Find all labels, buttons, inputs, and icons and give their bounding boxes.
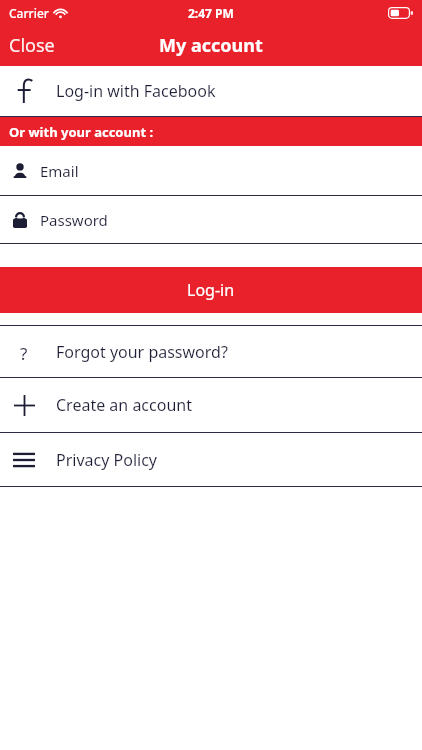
button[interactable]: Log-in with Facebook bbox=[0, 66, 422, 116]
staticText: Log-in with Facebook bbox=[56, 80, 216, 102]
staticText: My account bbox=[159, 33, 263, 58]
staticText: Create an account bbox=[56, 394, 192, 416]
button[interactable]: Password bbox=[0, 196, 422, 243]
button[interactable]: Privacy Policy bbox=[0, 433, 422, 486]
button[interactable]: ? bbox=[0, 326, 422, 377]
button[interactable]: Close bbox=[0, 25, 118, 66]
staticText: 2:47 PM bbox=[188, 5, 234, 21]
staticText: Log-in bbox=[187, 279, 235, 301]
staticText: Password bbox=[40, 210, 108, 230]
staticText: ? bbox=[20, 342, 28, 362]
staticText: Forgot your password? bbox=[56, 341, 228, 363]
staticText: Privacy Policy bbox=[56, 449, 157, 471]
button[interactable]: Create an account bbox=[0, 378, 422, 432]
staticText: Or with your account : bbox=[9, 123, 154, 141]
button[interactable]: Log-in bbox=[0, 267, 422, 313]
staticText: Email bbox=[40, 161, 79, 181]
button[interactable]: Email bbox=[0, 146, 422, 195]
staticText: Carrier bbox=[9, 5, 49, 21]
staticText: Close bbox=[9, 33, 55, 58]
